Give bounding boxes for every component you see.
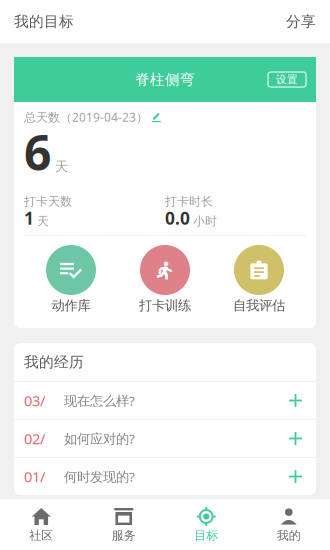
button[interactable]: 01/ (14, 458, 316, 495)
staticText: 01/ (24, 467, 45, 486)
button[interactable]: 我的 (247, 499, 330, 550)
staticText: 02/ (24, 429, 45, 448)
staticText: 自我评估 (233, 297, 285, 314)
staticText: 6 (24, 120, 51, 184)
staticText: 现在怎么样? (64, 392, 135, 409)
button[interactable]: 设置 (268, 72, 306, 87)
staticText: 打卡训练 (139, 297, 191, 314)
staticText: 我的目标 (14, 12, 74, 30)
staticText: 天 (55, 158, 68, 175)
staticText: 设置 (276, 73, 298, 86)
staticText: 小时 (193, 214, 217, 228)
staticText: 我的 (277, 528, 301, 543)
button[interactable]: 服务 (82, 499, 165, 550)
staticText: 服务 (112, 528, 136, 543)
button[interactable]: 打卡训练 (118, 245, 212, 313)
button[interactable]: 分享 (286, 12, 316, 30)
button[interactable]: 03/ (14, 382, 316, 419)
staticText: 1 (24, 206, 34, 229)
staticText: 分享 (286, 12, 316, 30)
staticText: 打卡时长 (165, 194, 213, 209)
staticText: 目标 (194, 528, 218, 543)
staticText: 03/ (24, 391, 45, 410)
button[interactable]: 动作库 (24, 245, 118, 313)
button[interactable]: 自我评估 (212, 245, 306, 313)
button[interactable]: 社区 (0, 499, 82, 550)
staticText: 0.0 (165, 206, 190, 229)
staticText: 动作库 (51, 297, 90, 314)
staticText: 社区 (29, 528, 53, 543)
staticText: 我的经历 (24, 353, 84, 371)
staticText: 总天数（2019-04-23） (24, 109, 148, 125)
button[interactable]: 目标 (165, 499, 247, 550)
staticText: 打卡天数 (24, 194, 72, 209)
staticText: 如何应对的? (64, 430, 135, 447)
staticText: 天 (37, 214, 49, 228)
button[interactable]: 02/ (14, 420, 316, 457)
staticText: 脊柱侧弯 (135, 70, 195, 88)
staticText: 何时发现的? (64, 468, 135, 485)
